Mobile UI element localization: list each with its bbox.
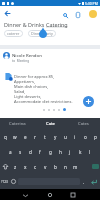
- staticText: r: [34, 134, 36, 140]
- button[interactable]: z: [10, 159, 20, 174]
- button[interactable]: Back: [2, 9, 13, 17]
- button[interactable]: b: [50, 159, 60, 174]
- button[interactable]: y: [50, 129, 60, 144]
- button[interactable]: l: [85, 144, 95, 159]
- staticText: Main dish choices,: [14, 84, 49, 89]
- button[interactable]: s: [15, 144, 25, 159]
- staticText: t: [44, 134, 46, 140]
- staticText: y: [54, 134, 57, 140]
- staticText: b: [54, 164, 57, 170]
- button[interactable]: a: [5, 144, 15, 159]
- staticText: o: [84, 134, 87, 140]
- staticText: j: [69, 149, 71, 155]
- button[interactable]: Cate: [34, 118, 67, 129]
- staticText: f: [39, 149, 41, 155]
- staticText: ?123: [1, 180, 8, 184]
- staticText: d: [29, 149, 32, 155]
- button[interactable]: r: [30, 129, 40, 144]
- button[interactable]: Hide keyboard: [20, 190, 30, 200]
- staticText: Appetizers,: [14, 79, 35, 84]
- staticText: Catering: [46, 21, 68, 28]
- staticText: n: [64, 164, 67, 170]
- staticText: Salad,: [14, 89, 26, 94]
- staticText: v: [44, 164, 47, 170]
- staticText: q: [4, 134, 7, 140]
- button[interactable]: Enter: [88, 174, 100, 189]
- staticText: s: [19, 149, 22, 155]
- staticText: caterer: [7, 31, 20, 36]
- button[interactable]: q: [0, 129, 10, 144]
- button[interactable]: g: [45, 144, 55, 159]
- button[interactable]: Backspace: [90, 159, 100, 174]
- button[interactable]: Home: [45, 190, 55, 200]
- button[interactable]: o: [80, 129, 90, 144]
- staticText: .: [83, 179, 85, 185]
- button[interactable]: Attachment: [73, 10, 83, 20]
- button[interactable]: v: [40, 159, 50, 174]
- button[interactable]: n: [60, 159, 70, 174]
- button[interactable]: Recents: [68, 190, 78, 200]
- button[interactable]: Cates: [67, 118, 100, 129]
- button[interactable]: w: [10, 129, 20, 144]
- button[interactable]: c: [30, 159, 40, 174]
- staticText: z: [14, 164, 17, 170]
- button[interactable]: p: [90, 129, 100, 144]
- button[interactable]: Add: [83, 96, 94, 107]
- button[interactable]: k: [75, 144, 85, 159]
- button[interactable]: h: [55, 144, 65, 159]
- button[interactable]: x: [20, 159, 30, 174]
- staticText: p: [94, 134, 97, 140]
- button[interactable]: Caterina: [0, 118, 34, 129]
- staticText: g: [49, 149, 52, 155]
- staticText: Nicole Rendon: [12, 52, 42, 58]
- button[interactable]: Shift: [0, 159, 10, 174]
- button[interactable]: e: [20, 129, 30, 144]
- staticText: a: [9, 149, 12, 155]
- staticText: Light desserts,: [14, 94, 42, 99]
- staticText: l: [89, 149, 91, 155]
- staticText: to Meeting: [12, 59, 30, 63]
- staticText: Dinner & Drinks: [4, 21, 46, 28]
- staticText: m: [73, 164, 78, 170]
- staticText: e: [24, 134, 27, 140]
- staticText: Cate: [46, 121, 55, 127]
- staticText: Dinner for approx 85,: [14, 74, 55, 79]
- button[interactable]: Account: [89, 10, 97, 18]
- button[interactable]: Search: [60, 10, 70, 20]
- staticText: u: [64, 134, 67, 140]
- button[interactable]: .: [80, 174, 88, 189]
- staticText: w: [13, 134, 17, 140]
- button[interactable]: f: [35, 144, 45, 159]
- staticText: Cates: [78, 121, 89, 127]
- staticText: 5:30 PM: [85, 1, 98, 6]
- button[interactable]: caterer: [4, 30, 23, 37]
- button[interactable]: Emoji: [9, 174, 18, 189]
- staticText: Accommodate diet restrictions.: [14, 99, 73, 104]
- staticText: Dinner Party: [31, 31, 53, 36]
- button[interactable]: i: [70, 129, 80, 144]
- button[interactable]: m: [70, 159, 80, 174]
- staticText: i: [74, 134, 76, 140]
- button[interactable]: d: [25, 144, 35, 159]
- button[interactable]: t: [40, 129, 50, 144]
- button[interactable]: ?123: [0, 174, 9, 189]
- button[interactable]: j: [65, 144, 75, 159]
- staticText: Caterina: [9, 121, 26, 127]
- staticText: k: [79, 149, 82, 155]
- staticText: h: [59, 149, 62, 155]
- button[interactable]: Dinner Party: [28, 30, 56, 37]
- staticText: x: [24, 164, 27, 170]
- button[interactable]: u: [60, 129, 70, 144]
- staticText: c: [34, 164, 37, 170]
